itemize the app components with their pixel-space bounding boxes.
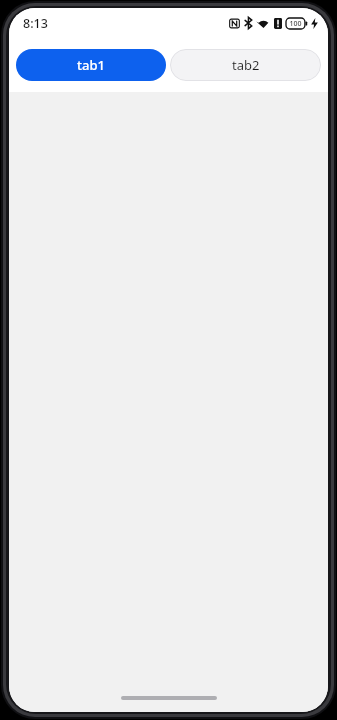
staticText: 100 (289, 19, 302, 29)
button[interactable]: tab2 (170, 49, 321, 81)
button[interactable]: tab1 (16, 49, 166, 81)
staticText: tab2 (232, 56, 260, 74)
staticText: 8:13 (23, 15, 48, 32)
other: Home gesture bar (121, 696, 217, 700)
staticText: tab1 (77, 56, 105, 74)
